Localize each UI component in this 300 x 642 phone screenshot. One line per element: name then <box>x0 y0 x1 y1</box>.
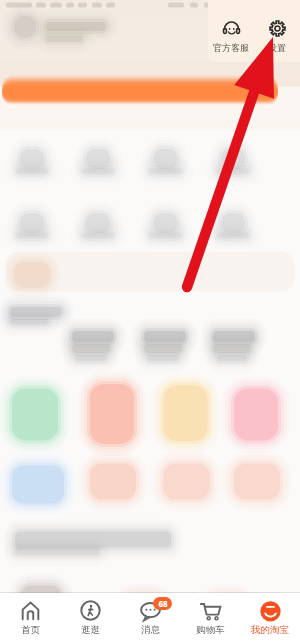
button[interactable]: 购物车 <box>180 593 240 642</box>
staticText: 首页 <box>21 624 40 636</box>
button[interactable]: 首页 <box>0 593 60 642</box>
staticText: 消息 <box>141 624 160 636</box>
staticText: 官方客服 <box>213 42 249 53</box>
staticText: 设置 <box>268 42 286 53</box>
staticText: 我的淘宝 <box>251 624 289 636</box>
button[interactable]: 逛逛 <box>60 593 120 642</box>
staticText: 68 <box>158 598 168 609</box>
button[interactable]: 我的淘宝 <box>240 593 300 642</box>
button[interactable]: Official customer service <box>209 9 253 53</box>
button[interactable]: 68 <box>120 593 180 642</box>
button[interactable]: Settings <box>255 9 299 53</box>
staticText: 购物车 <box>196 624 225 636</box>
staticText: 逛逛 <box>81 624 100 636</box>
